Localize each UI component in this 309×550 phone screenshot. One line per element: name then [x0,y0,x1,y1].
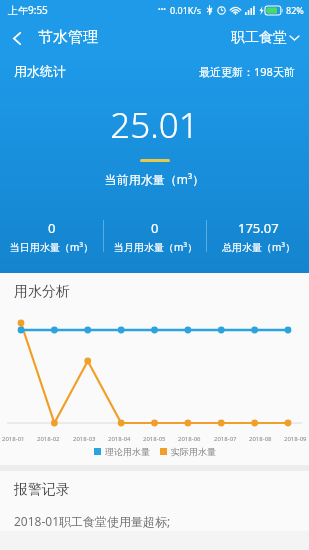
button[interactable]: 职工食堂 [221,23,309,53]
staticText: ••• [158,5,166,15]
staticText: 2018-01职工食堂使用量超标; [14,513,171,529]
staticText: 82% [286,4,304,16]
staticText: 0 [48,219,56,237]
staticText: 用水统计 [14,63,66,79]
button[interactable]: 2018-01职工食堂使用量超标; [14,511,295,531]
staticText: 2018-01 [2,435,25,443]
staticText: 总用水量（m³） [222,240,295,254]
staticText: 2018-03 [73,435,96,443]
staticText: 2018-08 [249,435,272,443]
staticText: 2018-02 [37,435,60,443]
staticText: 当月用水量（m³） [114,240,197,254]
staticText: 0 [151,219,159,237]
staticText: 当日用水量（m³） [10,240,93,254]
staticText: 报警记录 [14,481,70,499]
staticText: 2018-07 [214,435,237,443]
staticText: 25.01 [0,101,309,149]
staticText: 2018-09 [284,435,307,443]
staticText: 2018-06 [178,435,201,443]
staticText: 节水管理 [38,28,98,47]
staticText: 实际用水量 [171,446,216,457]
staticText: 175.07 [238,219,279,237]
staticText: 2018-04 [108,435,131,443]
staticText: 用水分析 [14,283,70,301]
staticText: 上午9:55 [8,3,48,17]
button[interactable]: 返回 [0,21,34,55]
staticText: 最近更新：198天前 [199,64,295,79]
staticText: 当前用水量（m³） [0,171,309,187]
staticText: 理论用水量 [105,446,150,457]
staticText: 2018-05 [143,435,166,443]
staticText: 职工食堂 [231,29,287,47]
staticText: 0.01K/s [170,4,202,16]
